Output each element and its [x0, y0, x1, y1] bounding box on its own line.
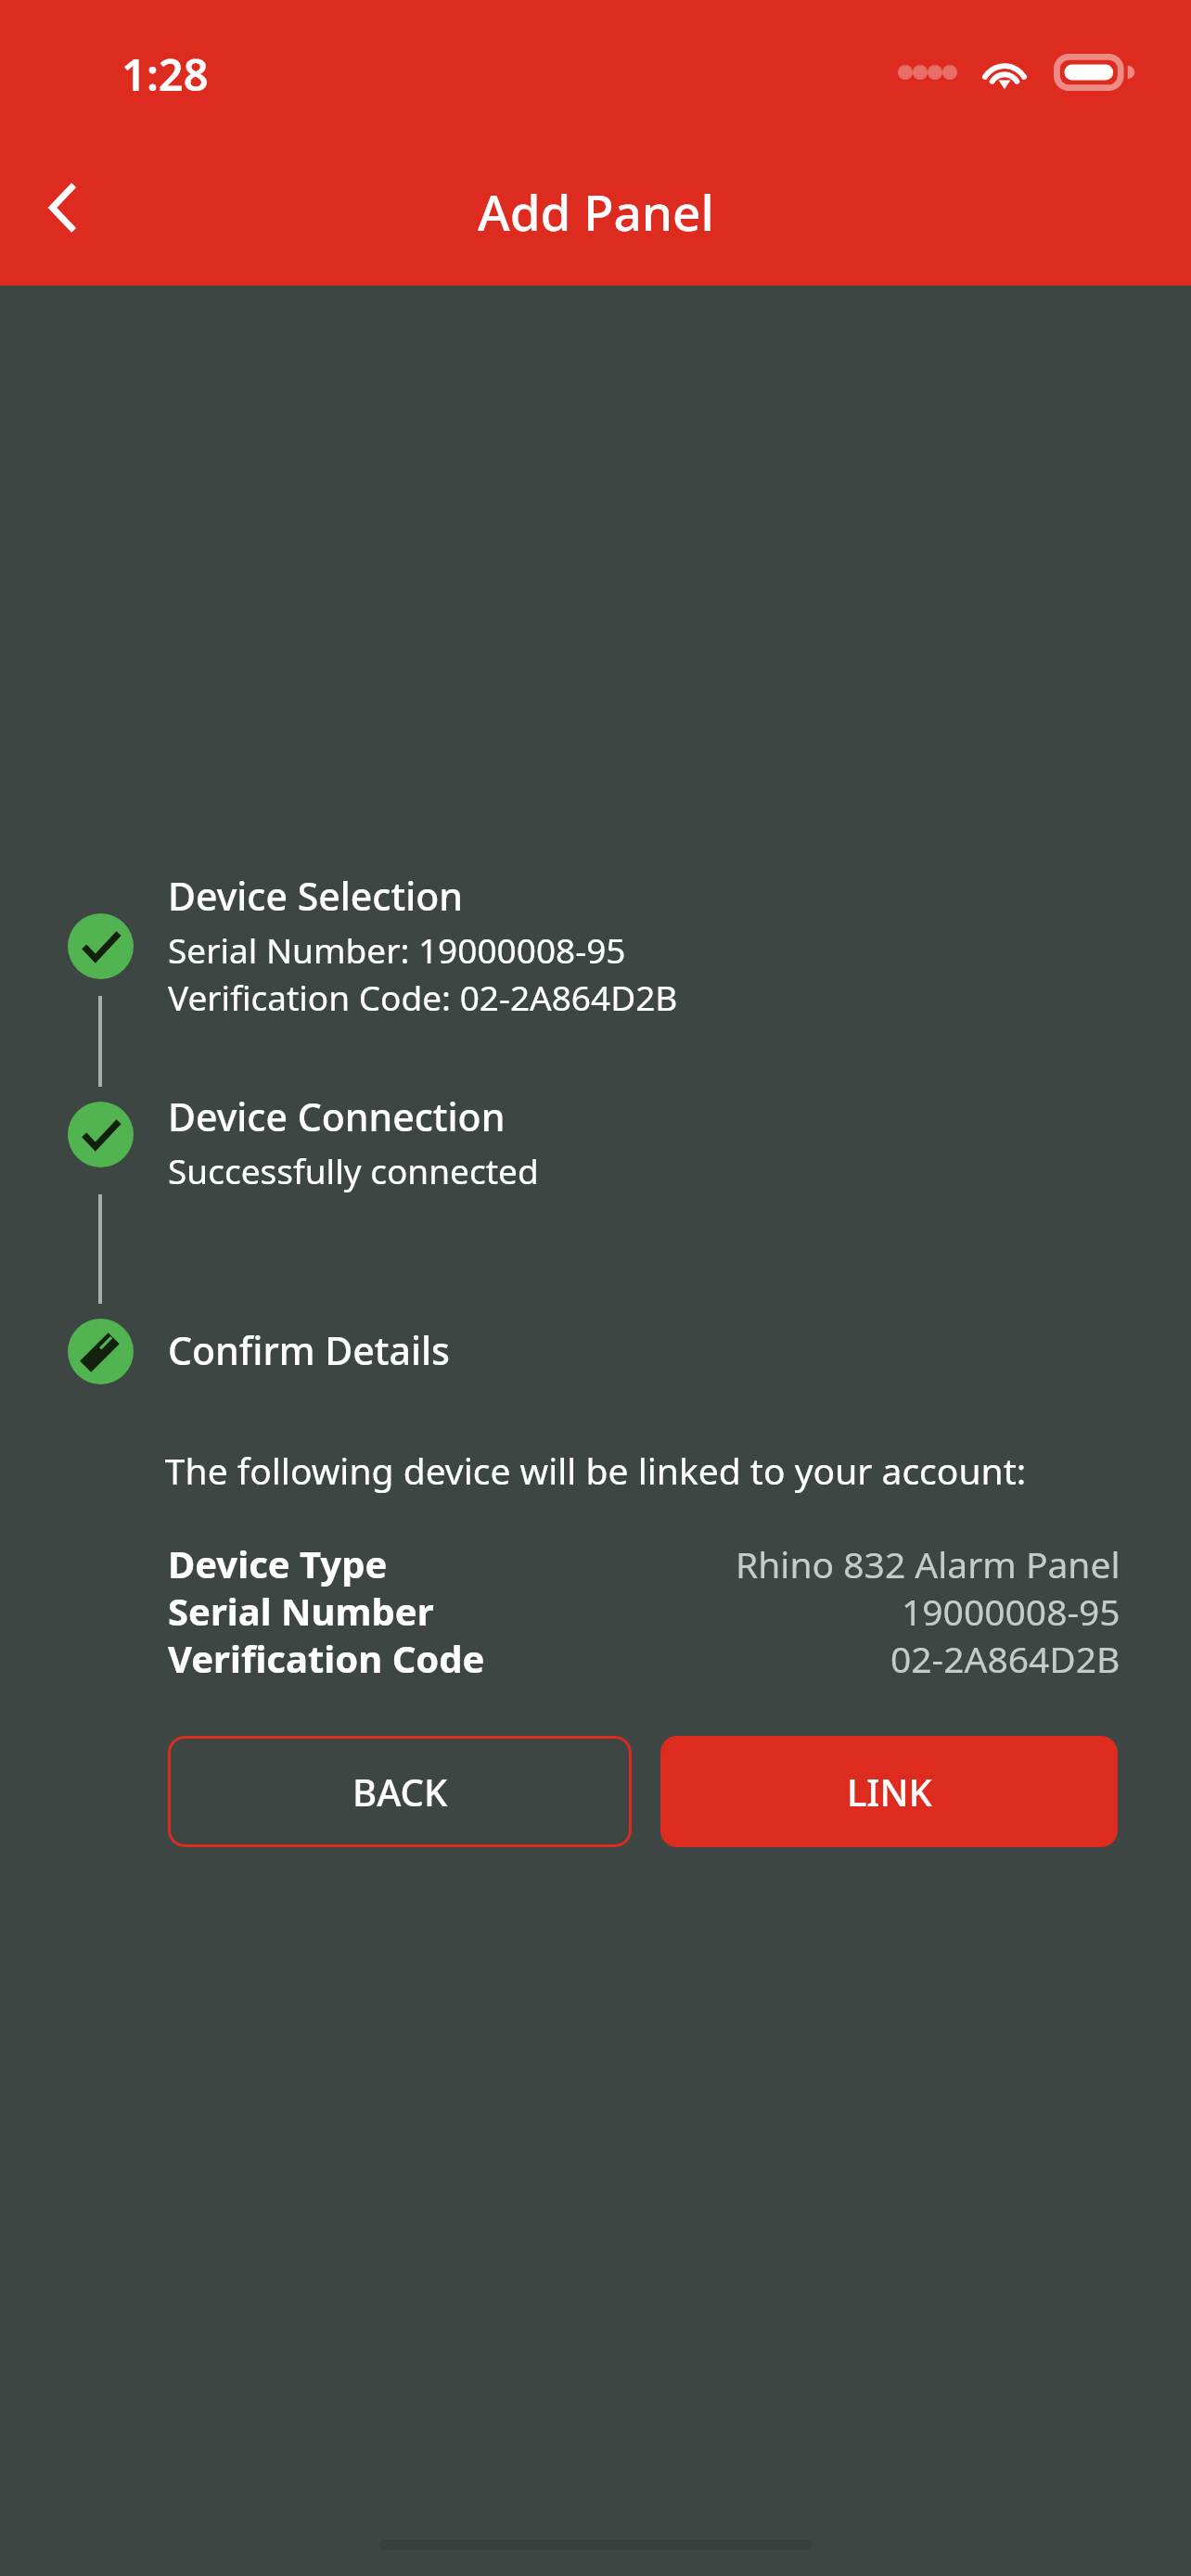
staticText: Successfully connected — [168, 1147, 539, 1193]
staticText: Device Selection — [168, 870, 464, 922]
staticText: 1:28 — [122, 45, 209, 104]
staticText: Serial Number: 19000008-95 — [168, 926, 626, 973]
staticText: Confirm Details — [168, 1324, 451, 1376]
staticText: Device Connection — [168, 1090, 506, 1142]
staticText: Verification Code: 02-2A864D2B — [168, 974, 678, 1020]
button[interactable]: Back — [20, 165, 106, 250]
staticText: Verification Code — [168, 1633, 485, 1683]
staticText: Device Type — [168, 1538, 388, 1588]
staticText: LINK — [847, 1766, 932, 1817]
staticText: BACK — [352, 1766, 448, 1817]
staticText: The following device will be linked to y… — [28, 1446, 1163, 1495]
staticText: Add Panel — [478, 178, 714, 245]
button[interactable]: BACK — [168, 1736, 632, 1847]
staticText: Rhino 832 Alarm Panel — [736, 1539, 1121, 1588]
staticText: 02-2A864D2B — [890, 1634, 1121, 1683]
staticText: 19000008-95 — [902, 1587, 1121, 1636]
button[interactable]: LINK — [660, 1736, 1118, 1847]
staticText: Serial Number — [168, 1586, 434, 1636]
